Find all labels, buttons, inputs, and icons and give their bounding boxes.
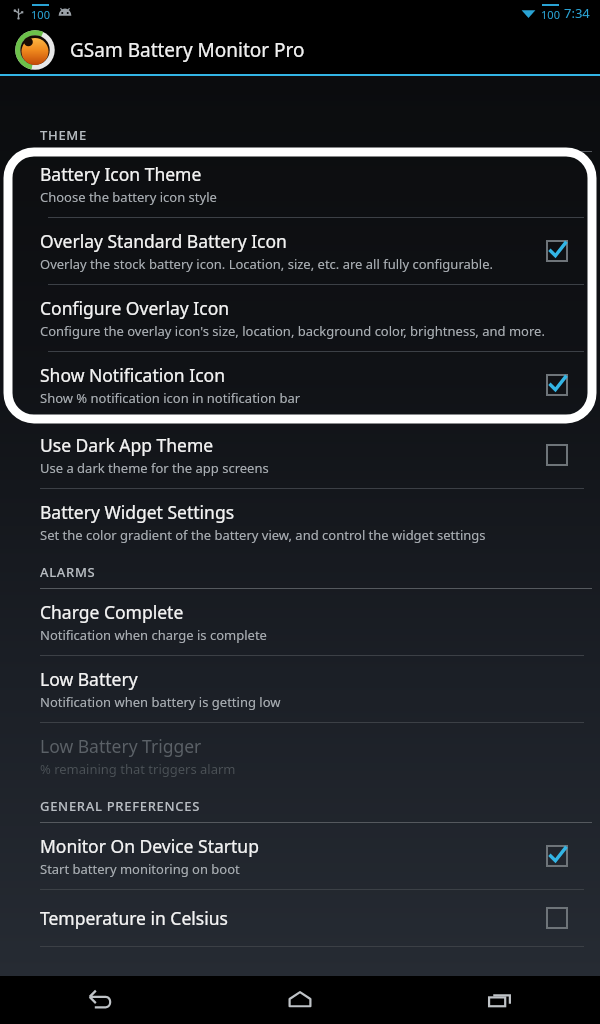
button[interactable]: Charge Complete <box>8 589 592 655</box>
staticText: THEME <box>40 126 87 144</box>
button[interactable]: Overlay Standard Battery Icon <box>8 218 592 284</box>
button[interactable]: Low Battery Trigger <box>8 723 592 789</box>
staticText: Configure Overlay Icon <box>40 296 230 320</box>
staticText: Low Battery Trigger <box>40 734 202 758</box>
button[interactable]: GSam Battery Monitor Pro <box>0 26 600 74</box>
staticText: 7:34 <box>564 4 590 22</box>
button[interactable]: Show Notification Icon <box>8 352 592 419</box>
staticText: Set the color gradient of the battery vi… <box>40 526 486 544</box>
staticText: Battery Icon Theme <box>40 162 202 186</box>
button[interactable]: Temperature in Celsius <box>8 890 592 946</box>
button[interactable]: Battery Icon Theme <box>8 152 592 217</box>
staticText: Overlay the stock battery icon. Location… <box>40 255 493 273</box>
staticText: Configure the overlay icon's size, locat… <box>40 322 545 340</box>
button[interactable]: Low Battery <box>8 656 592 722</box>
staticText: GSam Battery Monitor Pro <box>70 37 305 63</box>
button[interactable]: Checked <box>540 234 574 268</box>
button[interactable]: Checked <box>540 368 574 402</box>
button[interactable]: Unchecked <box>540 901 574 935</box>
button[interactable]: Home <box>200 976 400 1024</box>
button[interactable]: Monitor On Device Startup <box>8 823 592 889</box>
button[interactable]: Use Dark App Theme <box>8 419 592 488</box>
staticText: 100 <box>541 7 560 22</box>
button[interactable]: Recents <box>400 976 600 1024</box>
staticText: 100 <box>31 7 50 22</box>
staticText: Battery Widget Settings <box>40 500 235 524</box>
staticText: Charge Complete <box>40 600 184 624</box>
button[interactable]: Battery Widget Settings <box>8 489 592 555</box>
staticText: Notification when battery is getting low <box>40 693 281 711</box>
staticText: Temperature in Celsius <box>40 906 228 930</box>
staticText: Show Notification Icon <box>40 363 225 387</box>
staticText: Notification when charge is complete <box>40 626 267 644</box>
button[interactable]: Configure Overlay Icon <box>8 285 592 351</box>
staticText: Use Dark App Theme <box>40 433 214 457</box>
staticText: Start battery monitoring on boot <box>40 860 240 878</box>
button[interactable]: Unchecked <box>540 438 574 472</box>
staticText: ALARMS <box>40 563 96 581</box>
staticText: % remaining that triggers alarm <box>40 760 236 778</box>
staticText: Monitor On Device Startup <box>40 834 259 858</box>
staticText: GENERAL PREFERENCES <box>40 797 201 815</box>
staticText: Overlay Standard Battery Icon <box>40 229 287 253</box>
staticText: Choose the battery icon style <box>40 188 217 206</box>
staticText: Low Battery <box>40 667 138 691</box>
button[interactable]: Checked <box>540 839 574 873</box>
staticText: Show % notification icon in notification… <box>40 389 301 407</box>
button[interactable]: Back <box>0 976 200 1024</box>
staticText: Use a dark theme for the app screens <box>40 459 269 477</box>
